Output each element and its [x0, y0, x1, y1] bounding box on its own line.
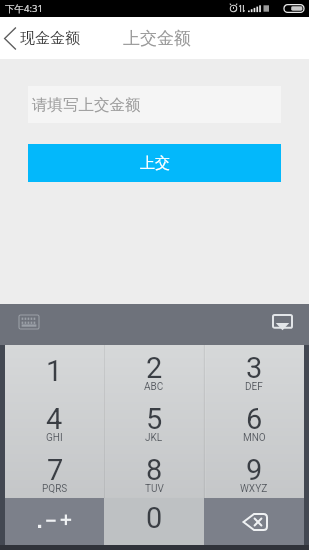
button[interactable]: 3 — [204, 345, 304, 396]
button[interactable]: 0 — [104, 498, 204, 545]
button[interactable]: 9 — [204, 447, 304, 498]
staticText: 4 — [46, 402, 63, 436]
button[interactable]: Switch input method — [9, 305, 49, 339]
button[interactable]: 7 — [5, 447, 104, 498]
staticText: 6 — [246, 402, 263, 436]
staticText: ABC — [144, 381, 164, 393]
staticText: 2 — [146, 351, 163, 385]
button[interactable]: 1 — [5, 345, 104, 396]
staticText: 现金金额 — [20, 29, 80, 48]
staticText: 上交 — [140, 154, 170, 173]
button[interactable]: 6 — [204, 396, 304, 447]
button[interactable] — [5, 498, 104, 545]
staticText: 9 — [246, 453, 263, 487]
button[interactable]: 8 — [104, 447, 204, 498]
staticText: 0 — [146, 501, 163, 535]
staticText: JKL — [145, 432, 163, 444]
staticText: 3 — [246, 351, 263, 385]
staticText: PQRS — [42, 483, 68, 495]
button[interactable]: Backspace — [204, 498, 304, 545]
button[interactable]: 上交 — [28, 144, 281, 182]
button[interactable]: 5 — [104, 396, 204, 447]
staticText: 请填写上交金额 — [32, 95, 141, 115]
button[interactable]: 现金金额 — [0, 28, 88, 49]
staticText: MNO — [243, 432, 266, 444]
staticText: TUV — [145, 483, 164, 495]
button[interactable]: 2 — [104, 345, 204, 396]
button[interactable]: 请填写上交金额 — [28, 86, 281, 123]
staticText: 5 — [146, 402, 163, 436]
button[interactable]: 4 — [5, 396, 104, 447]
staticText: GHI — [46, 432, 63, 444]
staticText: 1 — [46, 354, 63, 388]
staticText: DEF — [245, 381, 263, 393]
button[interactable]: Hide keyboard — [262, 304, 303, 340]
staticText: WXYZ — [240, 483, 268, 495]
staticText: 上交金额 — [123, 28, 191, 49]
staticText: 8 — [146, 453, 163, 487]
staticText: 7 — [47, 453, 64, 487]
staticText: 下午4:31 — [5, 2, 43, 15]
